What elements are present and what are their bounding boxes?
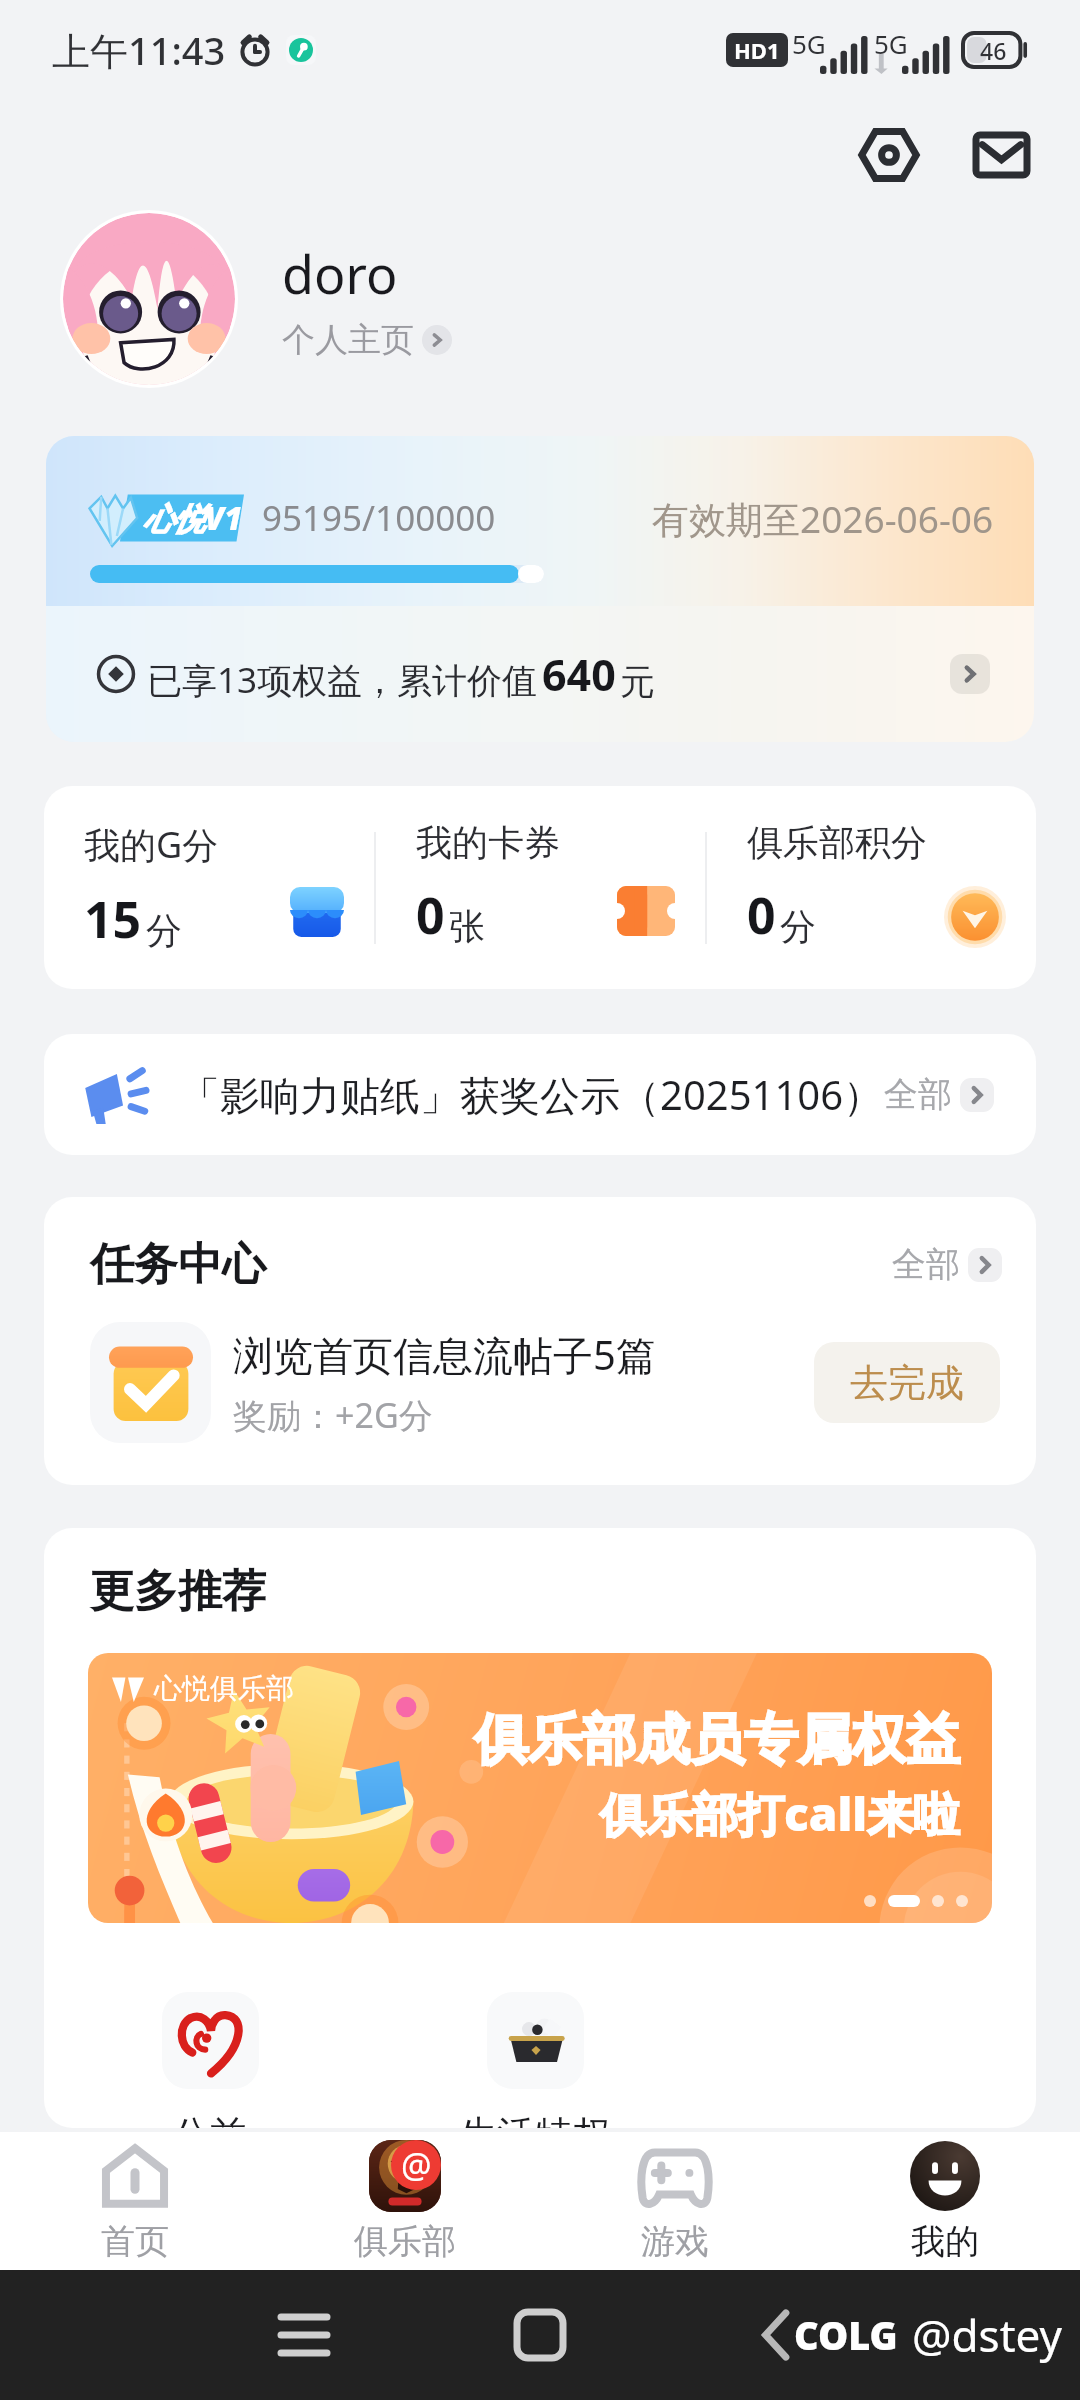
button[interactable]: Settings: [844, 110, 934, 200]
staticText: 去完成: [850, 1359, 964, 1407]
staticText: 游戏: [641, 2220, 709, 2263]
staticText: 我的: [911, 2220, 979, 2263]
staticText: 我的G分: [84, 820, 219, 869]
staticText: 分: [146, 908, 182, 953]
staticText: 奖励：+2G分: [233, 1392, 433, 1438]
staticText: 浏览首页信息流帖子5篇: [233, 1327, 656, 1382]
button[interactable]: Recent apps: [272, 2303, 336, 2367]
staticText: 张: [449, 904, 485, 949]
staticText: 46: [980, 35, 1007, 66]
staticText: 95195/100000: [262, 494, 496, 542]
staticText: 全部: [884, 1073, 952, 1116]
staticText: 「影响力贴纸」获奖公示（20251106）: [180, 1067, 884, 1122]
staticText: 640: [542, 645, 616, 704]
staticText: 俱乐部成员专属权益: [474, 1706, 960, 1774]
button[interactable]: @: [270, 2132, 540, 2270]
staticText: 俱乐部积分: [747, 820, 927, 865]
button[interactable]: 全部: [892, 1243, 1002, 1286]
button[interactable]: 心悦俱乐部: [88, 1653, 992, 1923]
staticText: 公益: [172, 2111, 248, 2128]
staticText: 俱乐部打call来啦: [600, 1782, 960, 1845]
button[interactable]: Home: [508, 2303, 572, 2367]
staticText: 15: [84, 885, 142, 953]
button[interactable]: 心悦V1: [46, 436, 1034, 742]
staticText: 已享13项权益，累计价值: [147, 656, 538, 704]
staticText: 上午11:43: [52, 24, 226, 76]
staticText: @: [401, 2142, 432, 2188]
button[interactable]: doro: [60, 210, 1080, 388]
staticText: 生活特权: [459, 2111, 611, 2128]
staticText: 全部: [892, 1243, 960, 1286]
staticText: 分: [780, 904, 816, 949]
staticText: 个人主页: [282, 319, 414, 361]
button[interactable]: 生活特权: [445, 1992, 625, 2128]
staticText: COLG: [794, 2309, 898, 2361]
button[interactable]: 我的G分: [44, 786, 374, 989]
staticText: 元: [620, 660, 655, 704]
staticText: 俱乐部: [354, 2220, 456, 2263]
staticText: 首页: [101, 2220, 169, 2263]
staticText: 任务中心: [90, 1237, 266, 1292]
button[interactable]: 我的卡券: [376, 786, 705, 989]
staticText: 5G: [792, 26, 826, 61]
button[interactable]: Messages: [956, 110, 1046, 200]
staticText: doro: [282, 238, 398, 309]
staticText: @dstey: [912, 2305, 1062, 2365]
staticText: 我的卡券: [416, 820, 560, 865]
button[interactable]: 我的: [810, 2132, 1080, 2270]
button[interactable]: 俱乐部积分: [707, 786, 1036, 989]
button[interactable]: 游戏: [540, 2132, 810, 2270]
staticText: 心悦V1: [143, 497, 243, 539]
staticText: HD1: [734, 35, 780, 65]
button[interactable]: 公益: [120, 1992, 300, 2128]
button[interactable]: 去完成: [814, 1342, 1000, 1423]
staticText: 有效期至2026-06-06: [652, 493, 994, 544]
staticText: 0: [747, 881, 776, 949]
button[interactable]: 首页: [0, 2132, 270, 2270]
staticText: 心悦俱乐部: [154, 1671, 294, 1706]
staticText: 0: [416, 881, 445, 949]
staticText: 更多推荐: [90, 1564, 266, 1619]
button[interactable]: 「影响力贴纸」获奖公示（20251106）: [44, 1034, 1036, 1155]
button[interactable]: Back: [744, 2303, 808, 2367]
staticText: 5G: [874, 26, 908, 61]
